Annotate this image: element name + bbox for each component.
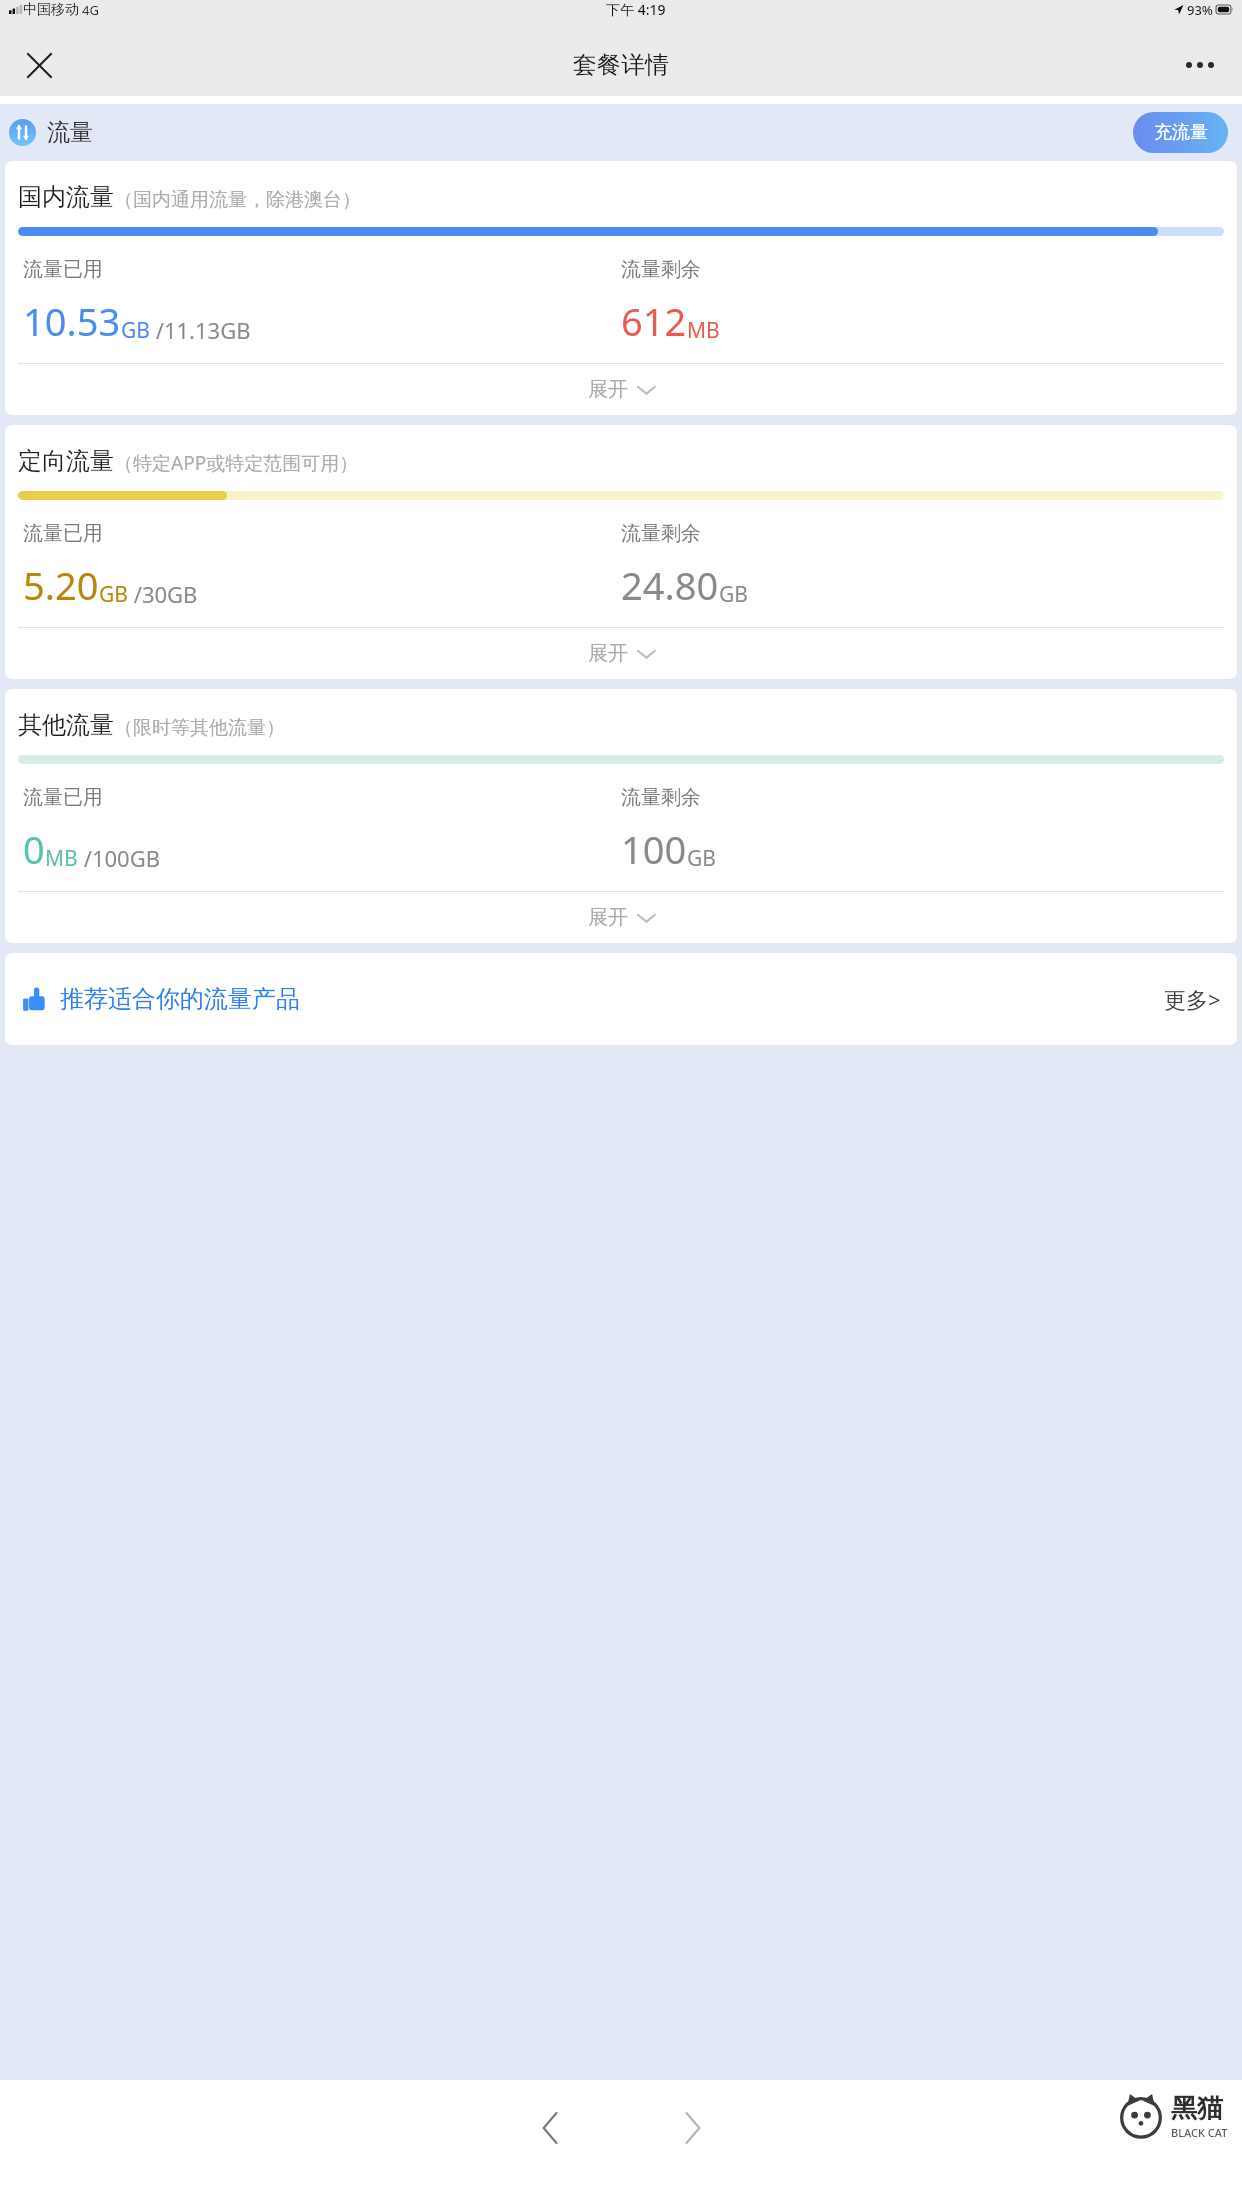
staticText: 国内流量 xyxy=(18,182,114,212)
staticText: /30GB xyxy=(128,579,198,609)
staticText: 0 xyxy=(23,823,45,875)
staticText: /100GB xyxy=(78,843,160,873)
button[interactable]: 充流量 xyxy=(1133,112,1228,153)
staticText: GB xyxy=(99,580,128,609)
staticText: 5.20 xyxy=(23,559,99,611)
staticText: 推荐适合你的流量产品 xyxy=(60,984,300,1014)
button[interactable]: 其他流量 xyxy=(5,689,1237,943)
staticText: /11.13GB xyxy=(150,315,251,345)
staticText: 流量剩余 xyxy=(621,521,701,546)
staticText: 展开 xyxy=(588,905,628,930)
staticText: MB xyxy=(45,844,78,873)
button[interactable]: 定向流量 xyxy=(5,425,1237,679)
button[interactable]: 推荐适合你的流量产品 xyxy=(5,953,1237,1045)
staticText: GB xyxy=(719,580,748,609)
staticText: 4G xyxy=(82,1,99,19)
staticText: 展开 xyxy=(588,641,628,666)
staticText: MB xyxy=(687,316,720,345)
staticText: 其他流量 xyxy=(18,710,114,740)
staticText: BLACK CAT xyxy=(1171,2125,1228,2140)
button[interactable]: 国内流量 xyxy=(5,161,1237,415)
staticText: 24.80 xyxy=(621,559,719,611)
staticText: 流量已用 xyxy=(23,257,103,282)
staticText: （国内通用流量，除港澳台） xyxy=(114,188,361,212)
staticText: 流量剩余 xyxy=(621,257,701,282)
button[interactable]: More options xyxy=(1174,39,1226,91)
staticText: （限时等其他流量） xyxy=(114,716,285,740)
button[interactable]: 展开 xyxy=(5,364,1237,415)
staticText: 93% xyxy=(1187,1,1213,19)
staticText: 定向流量 xyxy=(18,446,114,476)
staticText: 流量 xyxy=(47,118,93,147)
button[interactable]: 展开 xyxy=(5,892,1237,943)
staticText: 流量剩余 xyxy=(621,785,701,810)
staticText: 展开 xyxy=(588,377,628,402)
button[interactable]: Close xyxy=(14,40,64,90)
staticText: 612 xyxy=(621,295,687,347)
staticText: （特定APP或特定范围可用） xyxy=(114,450,359,476)
staticText: 更多> xyxy=(1164,984,1221,1014)
staticText: 流量已用 xyxy=(23,521,103,546)
button[interactable]: 更多> xyxy=(1164,984,1221,1014)
staticText: 黑猫 xyxy=(1171,2092,1223,2125)
staticText: 套餐详情 xyxy=(573,50,669,80)
staticText: 100 xyxy=(621,823,687,875)
staticText: 流量已用 xyxy=(23,785,103,810)
button[interactable]: Back xyxy=(512,2090,588,2166)
staticText: 中国移动 xyxy=(23,1,79,19)
staticText: 10.53 xyxy=(23,295,121,347)
staticText: GB xyxy=(687,844,716,873)
staticText: 充流量 xyxy=(1154,121,1208,144)
staticText: 下午 4:19 xyxy=(606,0,666,19)
staticText: GB xyxy=(121,316,150,345)
button[interactable]: Forward xyxy=(654,2090,730,2166)
button[interactable]: 展开 xyxy=(5,628,1237,679)
